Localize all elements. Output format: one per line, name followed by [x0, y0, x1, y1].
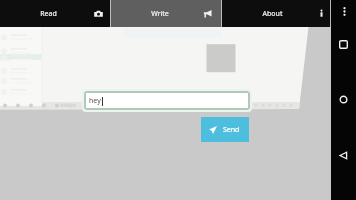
button[interactable]: Back: [335, 147, 351, 163]
staticText: Send: [223, 125, 240, 135]
button[interactable]: Read: [0, 0, 110, 27]
button[interactable]: Recent apps: [335, 36, 351, 52]
button[interactable]: hey: [82, 89, 252, 112]
button[interactable]: Home: [335, 91, 351, 107]
button[interactable]: About: [222, 0, 330, 27]
staticText: Write: [111, 9, 209, 19]
staticText: About: [222, 9, 323, 19]
button[interactable]: Write: [111, 0, 221, 27]
button[interactable]: More options: [339, 4, 349, 18]
button[interactable]: Send: [201, 117, 249, 142]
staticText: hey: [89, 96, 101, 106]
staticText: Read: [0, 9, 97, 19]
